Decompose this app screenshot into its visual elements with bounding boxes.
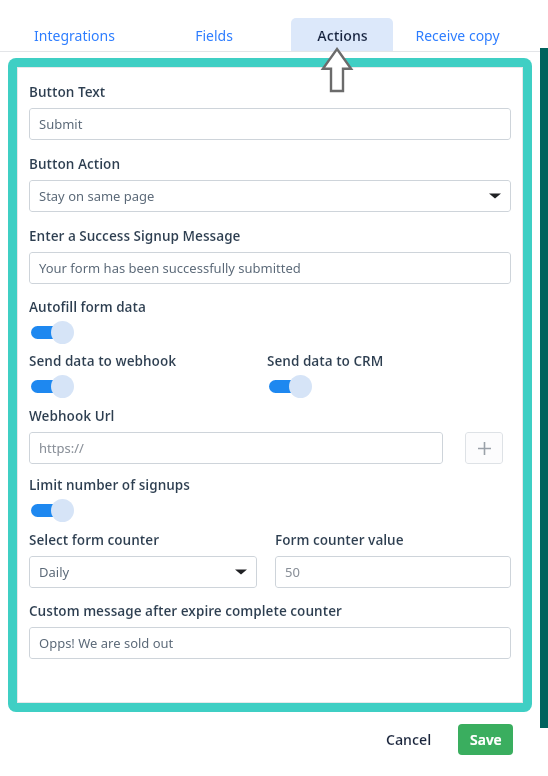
button[interactable]: Fields [181, 18, 247, 52]
button[interactable]: Send data to webhook toggle [29, 373, 75, 399]
staticText: Form counter value [275, 531, 404, 549]
staticText: 50 [285, 563, 300, 581]
button[interactable]: Stay on same page [29, 180, 511, 212]
staticText: Select form counter [29, 531, 160, 549]
staticText: Webhook Url [29, 407, 115, 425]
button[interactable]: Integrations [20, 18, 129, 52]
staticText: Send data to CRM [267, 352, 384, 370]
button[interactable]: Opps! We are sold out [29, 627, 511, 659]
button[interactable]: Submit [29, 108, 511, 140]
staticText: Custom message after expire complete cou… [29, 602, 342, 620]
button[interactable]: Cancel [380, 724, 438, 755]
staticText: Autofill form data [29, 298, 146, 316]
staticText: Send data to webhook [29, 352, 177, 370]
staticText: Integrations [34, 26, 115, 45]
staticText: Button Text [29, 83, 106, 101]
staticText: Your form has been successfully submitte… [39, 259, 301, 277]
button[interactable]: Save [458, 724, 513, 755]
button[interactable]: Receive copy [401, 18, 514, 52]
staticText: https:// [39, 439, 84, 457]
button[interactable]: 50 [275, 556, 511, 588]
button[interactable]: Send data to CRM toggle [267, 373, 313, 399]
staticText: Enter a Success Signup Message [29, 227, 241, 245]
staticText: Fields [195, 26, 233, 45]
staticText: Daily [39, 563, 70, 581]
button[interactable]: Limit number of signups toggle [29, 497, 75, 523]
staticText: Opps! We are sold out [39, 634, 174, 652]
button[interactable]: https:// [29, 432, 443, 464]
staticText: Actions [317, 26, 368, 45]
staticText: Stay on same page [39, 187, 155, 205]
button[interactable]: Daily [29, 556, 257, 588]
button[interactable]: Add webhook [465, 432, 503, 464]
staticText: Button Action [29, 155, 121, 173]
staticText: Limit number of signups [29, 476, 190, 494]
staticText: Receive copy [415, 26, 500, 45]
button[interactable]: Autofill form data toggle [29, 319, 75, 345]
staticText: Cancel [386, 730, 432, 749]
staticText: Submit [39, 115, 83, 133]
button[interactable]: Your form has been successfully submitte… [29, 252, 511, 284]
staticText: Save [470, 730, 502, 749]
button[interactable]: Actions [291, 18, 393, 52]
